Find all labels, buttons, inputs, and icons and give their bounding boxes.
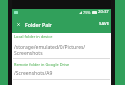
button[interactable]: Remote folder in Google Drive [12, 59, 111, 77]
button[interactable]: Close [12, 15, 24, 33]
button[interactable]: Local folder in device [12, 33, 111, 57]
staticText: Folder Pair [25, 21, 52, 28]
staticText: SAVE [99, 21, 110, 27]
staticText: /Screenshots/A9 [14, 70, 53, 77]
button[interactable]: SAVE [95, 17, 111, 31]
staticText: Remote folder in Google Drive [14, 62, 70, 67]
staticText: 20:37 [98, 9, 109, 15]
staticText: 75% [83, 10, 91, 15]
staticText: /storage/emulated/0/Pictures/ Screenshot… [14, 44, 86, 57]
staticText: Local folder in device [14, 34, 53, 39]
